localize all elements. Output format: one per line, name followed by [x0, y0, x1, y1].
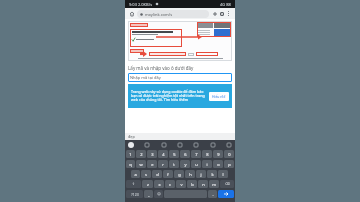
staticText: 2	[140, 152, 143, 157]
button[interactable]: 0	[224, 150, 234, 158]
button[interactable]: Emoji	[193, 142, 199, 148]
staticText: h	[189, 172, 192, 177]
button[interactable]: k	[207, 170, 217, 178]
button[interactable]: f	[163, 170, 173, 178]
button[interactable]: Home	[128, 10, 135, 17]
button[interactable]: e	[147, 160, 157, 168]
button[interactable]: Tabs	[218, 10, 225, 17]
button[interactable]: ,	[144, 190, 153, 198]
staticText: 6	[221, 12, 223, 16]
staticText: ☺	[157, 192, 161, 196]
staticText: Lấy mã và nhập vào ô dưới đây	[128, 65, 194, 71]
staticText: 0	[228, 152, 231, 157]
button[interactable]: 8	[202, 150, 212, 158]
button[interactable]: c	[165, 180, 175, 188]
button[interactable]: 1	[126, 150, 135, 158]
button[interactable]: 6	[180, 150, 190, 158]
button[interactable]: d	[152, 170, 162, 178]
staticText: i	[206, 162, 208, 167]
button[interactable]: p	[224, 160, 234, 168]
staticText: f	[167, 172, 169, 177]
staticText: 4G 88	[220, 2, 231, 7]
button[interactable]: 7	[191, 150, 201, 158]
staticText: g	[178, 172, 181, 177]
staticText: Nhập mã tại đây	[130, 75, 161, 80]
button[interactable]: .	[208, 190, 217, 198]
staticText: ⇧	[132, 182, 135, 186]
button[interactable]: v	[176, 180, 186, 188]
button[interactable]: 4	[158, 150, 168, 158]
button[interactable]: Backspace	[220, 180, 234, 188]
staticText: u	[195, 162, 198, 167]
button[interactable]: Shift	[126, 180, 141, 188]
button[interactable]: New tab	[211, 10, 218, 17]
button[interactable]: y	[180, 160, 190, 168]
staticText: đẹp	[128, 134, 135, 139]
button[interactable]: z	[142, 180, 153, 188]
staticText: .	[212, 192, 214, 197]
button[interactable]: s	[141, 170, 151, 178]
staticText: s	[145, 172, 147, 177]
staticText: n	[202, 182, 205, 187]
button[interactable]: t	[169, 160, 179, 168]
button[interactable]: More options	[225, 10, 232, 17]
button[interactable]: w	[136, 160, 146, 168]
staticText: 8	[206, 152, 209, 157]
button[interactable]: n	[198, 180, 208, 188]
button[interactable]: Settings	[210, 142, 216, 148]
staticText: Trang web này sử dụng cookie để đảm bảo …	[131, 89, 207, 103]
staticText: 1	[129, 152, 132, 157]
button[interactable]: mxylink.com/s	[137, 10, 209, 18]
button[interactable]: Sticker	[161, 142, 167, 148]
staticText: 9	[217, 152, 220, 157]
button[interactable]: l	[218, 170, 228, 178]
staticText: a	[134, 172, 137, 177]
staticText: 6	[184, 152, 187, 157]
button[interactable]: Symbols	[126, 190, 143, 198]
button[interactable]: 3	[147, 150, 157, 158]
button[interactable]: r	[158, 160, 168, 168]
staticText: t	[173, 162, 175, 167]
staticText: 3	[151, 152, 154, 157]
staticText: z	[147, 182, 149, 187]
button[interactable]: h	[185, 170, 195, 178]
staticText: 5	[173, 152, 176, 157]
staticText: x	[158, 182, 161, 187]
staticText: e	[151, 162, 154, 167]
button[interactable]: q	[126, 160, 135, 168]
button[interactable]: b	[187, 180, 197, 188]
button[interactable]: Nhập mã tại đây	[128, 73, 232, 82]
staticText: ⌫	[225, 182, 230, 186]
staticText: j	[200, 172, 202, 177]
button[interactable]: 9	[213, 150, 223, 158]
button[interactable]: GIF	[144, 142, 150, 148]
staticText: b	[191, 182, 194, 187]
staticText: l	[222, 172, 224, 177]
staticText: y	[184, 162, 187, 167]
button[interactable]: 5	[169, 150, 179, 158]
staticText: d	[156, 172, 159, 177]
staticText: p	[228, 162, 231, 167]
staticText: w	[139, 162, 143, 167]
button[interactable]: u	[191, 160, 201, 168]
button[interactable]: x	[154, 180, 164, 188]
staticText: ,	[148, 192, 150, 197]
staticText: k	[211, 172, 214, 177]
button[interactable]: Emoji	[154, 190, 163, 198]
button[interactable]: Voice	[226, 142, 232, 148]
button[interactable]: o	[213, 160, 223, 168]
button[interactable]: g	[174, 170, 184, 178]
button[interactable]: a	[131, 170, 140, 178]
button[interactable]: j	[196, 170, 206, 178]
button[interactable]: i	[202, 160, 212, 168]
staticText: 9:03 2.0KB/s	[129, 2, 153, 7]
button[interactable]: 2	[136, 150, 146, 158]
staticText: v	[180, 182, 183, 187]
button[interactable]: m	[209, 180, 219, 188]
button[interactable]: Google	[128, 142, 134, 148]
staticText: mxylink.com/s	[145, 12, 173, 17]
button[interactable]: Hiểu rồi!	[209, 92, 229, 101]
button[interactable]: Clipboard	[177, 142, 183, 148]
button[interactable]: Enter	[218, 190, 234, 198]
